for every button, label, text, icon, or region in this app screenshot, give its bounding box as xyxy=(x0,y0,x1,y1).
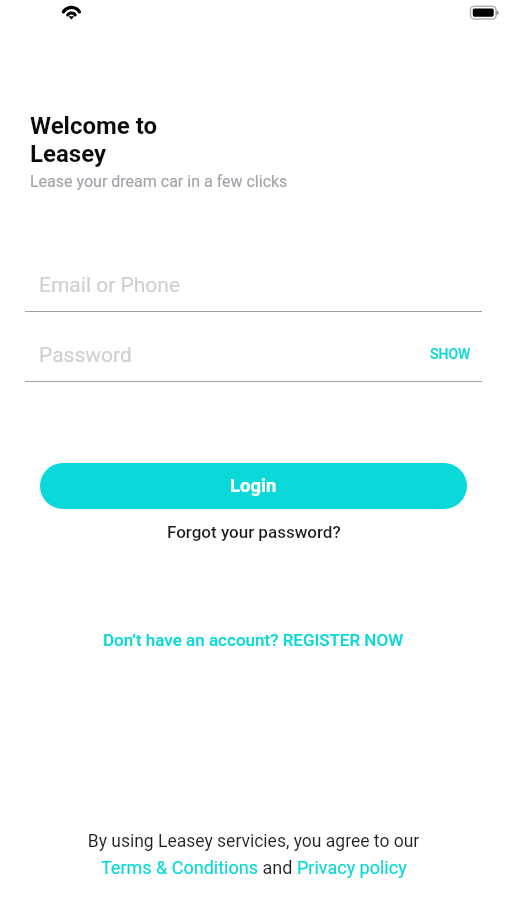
staticText: SHOW xyxy=(430,346,471,362)
staticText: Terms & Conditions xyxy=(101,857,258,878)
staticText: Don’t have an account? REGISTER NOW xyxy=(103,630,404,650)
staticText: Lease your dream car in a few clicks xyxy=(30,172,288,191)
staticText: Password xyxy=(39,343,132,368)
button[interactable]: Password xyxy=(25,336,482,382)
staticText: Forgot your password? xyxy=(167,522,341,542)
button[interactable]: Don’t have an account? REGISTER NOW xyxy=(93,626,414,654)
button[interactable]: Email or Phone xyxy=(25,266,482,312)
button[interactable]: Terms & Conditions xyxy=(101,857,258,878)
staticText: By using Leasey servicies, you agree to … xyxy=(0,831,507,852)
button[interactable]: Login xyxy=(40,463,467,509)
button[interactable]: Forgot your password? xyxy=(157,518,351,546)
staticText: Privacy policy xyxy=(297,857,407,878)
button[interactable]: Privacy policy xyxy=(297,857,407,878)
staticText: Email or Phone xyxy=(39,273,181,298)
staticText: Login xyxy=(230,475,277,497)
staticText: and xyxy=(258,857,297,878)
button[interactable]: Show password xyxy=(423,341,478,367)
staticText: Welcome to Leasey xyxy=(30,112,158,167)
